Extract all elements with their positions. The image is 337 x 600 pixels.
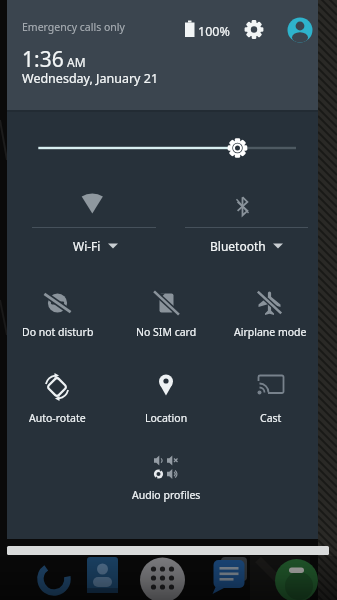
button[interactable] (286, 16, 314, 44)
button[interactable] (38, 138, 298, 158)
staticText: Airplane mode (234, 325, 307, 339)
button[interactable] (7, 546, 329, 555)
button[interactable] (32, 186, 156, 252)
staticText: Emergency calls only (22, 20, 125, 34)
staticText: Location (145, 411, 188, 425)
staticText: Bluetooth (210, 238, 266, 254)
staticText: Wi-Fi (73, 238, 101, 254)
button[interactable] (184, 186, 308, 252)
button[interactable] (114, 368, 218, 424)
button[interactable] (6, 283, 110, 339)
staticText: Audio profiles (132, 488, 201, 502)
staticText: Do not disturb (22, 325, 94, 339)
staticText: 100% (198, 23, 230, 40)
staticText: 1:36 (22, 45, 64, 74)
button[interactable] (5, 368, 109, 424)
button[interactable] (244, 19, 264, 39)
staticText: Auto-rotate (29, 411, 86, 425)
staticText: No SIM card (136, 325, 197, 339)
staticText: Wednesday, January 21 (22, 70, 159, 87)
staticText: Cast (260, 411, 282, 425)
button[interactable] (218, 368, 322, 424)
staticText: AM (67, 54, 86, 70)
button[interactable] (114, 283, 218, 339)
button[interactable] (126, 448, 206, 503)
button[interactable] (218, 283, 322, 339)
